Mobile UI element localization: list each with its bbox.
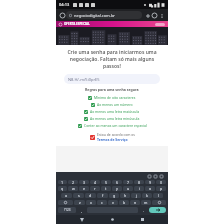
staticText: y <box>116 186 118 191</box>
staticText: g <box>113 193 116 198</box>
staticText: b <box>123 200 126 205</box>
staticText: 3 <box>83 180 86 184</box>
button[interactable]: Recent apps <box>138 215 147 224</box>
button[interactable]: Estou de acordo com os <box>90 132 135 142</box>
button[interactable]: o <box>145 186 155 191</box>
staticText: Ao menos uma letra minúscula <box>90 116 140 121</box>
button[interactable]: n <box>130 200 140 205</box>
button[interactable]: f <box>97 193 108 198</box>
staticText: k <box>146 193 148 198</box>
button[interactable]: Theme <box>152 173 158 179</box>
staticText: m <box>144 200 148 205</box>
staticText: 6 <box>116 180 119 184</box>
button[interactable]: Clipboard <box>146 173 152 179</box>
button[interactable]: Comma <box>77 207 86 213</box>
button[interactable]: Settings <box>158 173 164 179</box>
button[interactable]: negociodigital.com.br <box>66 11 142 19</box>
staticText: Conter ao menos um caractere especial <box>84 123 147 128</box>
button[interactable]: b <box>119 200 129 205</box>
staticText: 04:13 <box>59 2 70 7</box>
staticText: 7 <box>127 180 130 184</box>
button[interactable]: N8.H/-m/5i0prE5 <box>64 74 160 84</box>
button[interactable]: w <box>68 186 78 191</box>
staticText: Mínimo de oito caracteres <box>94 95 136 100</box>
button[interactable]: t <box>101 186 111 191</box>
button[interactable]: k <box>142 193 152 198</box>
staticText: Crie uma senha para iniciarmos uma negoc… <box>64 49 160 70</box>
button[interactable]: Home <box>59 12 66 19</box>
button[interactable]: ?123 <box>58 207 76 213</box>
staticText: . <box>143 208 145 213</box>
staticText: , <box>81 208 83 213</box>
staticText: OFERTA ESPECIAL <box>64 22 90 26</box>
button[interactable]: y <box>112 186 122 191</box>
button[interactable]: g <box>109 193 119 198</box>
staticText: a <box>65 193 68 198</box>
button[interactable]: Back <box>77 215 86 224</box>
staticText: 2 <box>72 180 75 184</box>
staticText: z <box>79 200 81 205</box>
staticText: x <box>90 200 92 205</box>
staticText: Regras para uma senha segura <box>85 87 139 92</box>
button[interactable]: e <box>79 186 89 191</box>
button[interactable]: a <box>61 193 72 198</box>
button[interactable]: 6 <box>112 180 122 184</box>
button[interactable]: i <box>134 186 144 191</box>
staticText: s <box>78 193 80 198</box>
staticText: u <box>127 186 130 191</box>
staticText: j <box>136 193 137 198</box>
staticText: p <box>160 186 163 191</box>
button[interactable]: Account <box>151 12 158 19</box>
button[interactable]: More options <box>158 12 165 19</box>
button[interactable]: x <box>86 200 96 205</box>
button[interactable]: Home <box>108 215 117 224</box>
button[interactable]: Backspace <box>152 200 166 205</box>
button[interactable]: s <box>73 193 84 198</box>
button[interactable]: Period <box>139 207 148 213</box>
button[interactable]: 9 <box>145 180 155 184</box>
staticText: Ao menos um número <box>97 102 133 107</box>
button[interactable]: 2 <box>68 180 78 184</box>
staticText: t <box>105 186 107 191</box>
staticText: o <box>149 186 152 191</box>
button[interactable]: 7 <box>123 180 133 184</box>
button[interactable]: j <box>131 193 141 198</box>
button[interactable]: m <box>141 200 151 205</box>
staticText: w <box>72 186 75 191</box>
button[interactable]: h <box>120 193 130 198</box>
button[interactable]: q <box>58 186 67 191</box>
button[interactable]: Enter <box>149 207 166 213</box>
button[interactable]: OFERTA ESPECIAL <box>56 21 168 27</box>
button[interactable]: 4 <box>90 180 100 184</box>
button[interactable]: Shift <box>58 200 73 205</box>
staticText: f <box>102 193 104 198</box>
staticText: n <box>134 200 137 205</box>
button[interactable]: 1 <box>58 180 67 184</box>
button[interactable]: v <box>108 200 118 205</box>
staticText: 1 <box>61 180 64 184</box>
button[interactable]: 3 <box>79 180 89 184</box>
staticText: e <box>83 186 86 191</box>
staticText: N8.H/-m/5i0prE5 <box>68 77 100 82</box>
button[interactable]: New tab <box>144 12 151 19</box>
button[interactable]: c <box>97 200 107 205</box>
staticText: negociodigital.com.br <box>74 13 116 18</box>
staticText: 0 <box>160 180 163 184</box>
button[interactable]: l <box>153 193 163 198</box>
button[interactable]: z <box>74 200 85 205</box>
staticText: ?123 <box>64 208 71 212</box>
button[interactable]: r <box>90 186 100 191</box>
button[interactable]: 8 <box>134 180 144 184</box>
staticText: q <box>61 186 64 191</box>
button[interactable]: d <box>85 193 96 198</box>
button[interactable]: 0 <box>156 180 166 184</box>
staticText: Ao menos uma letra maiúscula <box>90 109 140 114</box>
staticText: r <box>94 186 96 191</box>
button[interactable]: 5 <box>101 180 111 184</box>
staticText: i <box>139 186 140 191</box>
staticText: h <box>124 193 127 198</box>
staticText: Estou de acordo com os <box>97 132 135 137</box>
button[interactable]: u <box>123 186 133 191</box>
button[interactable]: p <box>156 186 166 191</box>
